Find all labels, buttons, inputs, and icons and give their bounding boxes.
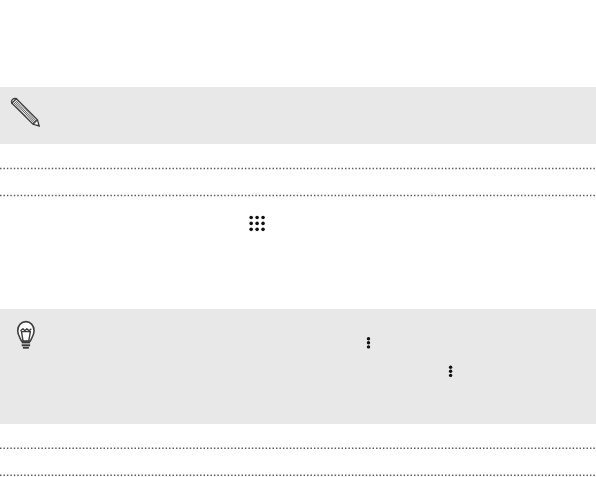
button[interactable]: Edit note — [0, 87, 596, 144]
button[interactable]: More options — [442, 362, 459, 379]
button[interactable]: More options — [360, 333, 377, 350]
button[interactable]: Tip — [13, 318, 38, 343]
button[interactable]: Edit note — [8, 94, 42, 128]
button[interactable]: All apps — [245, 211, 269, 235]
button[interactable]: Tip — [0, 309, 596, 424]
